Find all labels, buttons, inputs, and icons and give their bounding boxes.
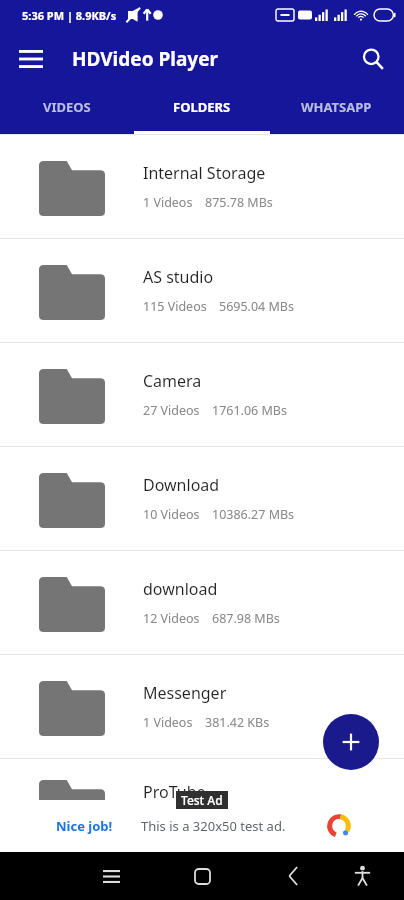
staticText: Nice job!: [56, 817, 113, 835]
staticText: 27 Videos: [143, 402, 200, 419]
button[interactable]: AS studio: [0, 239, 404, 342]
staticText: 10386.27 MBs: [212, 506, 295, 523]
staticText: 875.78 MBs: [205, 194, 273, 211]
button[interactable]: Add: [323, 714, 379, 770]
staticText: 5:36 PM | 8.9KB/s: [22, 8, 117, 23]
staticText: 12 Videos: [143, 610, 200, 627]
button[interactable]: Messenger: [0, 655, 404, 758]
button[interactable]: Camera: [0, 343, 404, 446]
staticText: 381.42 KBs: [205, 714, 270, 731]
staticText: 115 Videos: [143, 298, 207, 315]
button[interactable]: Back: [272, 855, 314, 897]
staticText: Messenger: [143, 682, 227, 704]
button[interactable]: FOLDERS: [134, 88, 269, 134]
button[interactable]: VIDEOS: [0, 88, 134, 134]
staticText: WHATSAPP: [301, 98, 372, 116]
button[interactable]: Home: [181, 855, 223, 897]
staticText: AS studio: [143, 266, 214, 288]
staticText: Test Ad: [181, 792, 223, 808]
staticText: VIDEOS: [43, 98, 91, 116]
button[interactable]: Internal Storage: [0, 135, 404, 238]
staticText: 1 Videos: [143, 714, 193, 731]
staticText: Internal Storage: [143, 162, 266, 184]
staticText: ProTube: [143, 781, 206, 803]
button[interactable]: Nice job!: [38, 800, 366, 852]
staticText: FOLDERS: [173, 98, 231, 116]
button[interactable]: Recents: [90, 855, 132, 897]
button[interactable]: Menu: [10, 38, 52, 80]
staticText: Download: [143, 474, 220, 496]
button[interactable]: download: [0, 551, 404, 654]
button[interactable]: ProTube: [0, 759, 404, 852]
button[interactable]: WHATSAPP: [269, 88, 404, 134]
staticText: This is a 320x50 test ad.: [141, 817, 286, 835]
button[interactable]: Download: [0, 447, 404, 550]
staticText: HDVideo Player: [72, 46, 218, 72]
button[interactable]: Accessibility: [341, 855, 383, 897]
staticText: download: [143, 578, 218, 600]
staticText: 1761.06 MBs: [212, 402, 287, 419]
staticText: Camera: [143, 370, 202, 392]
button[interactable]: Search: [352, 38, 394, 80]
staticText: 1 Videos: [143, 194, 193, 211]
staticText: 3 Videos: [143, 813, 193, 830]
staticText: 122.00 MBs: [205, 813, 273, 830]
staticText: 5695.04 MBs: [219, 298, 294, 315]
staticText: 687.98 MBs: [212, 610, 280, 627]
staticText: 10 Videos: [143, 506, 200, 523]
